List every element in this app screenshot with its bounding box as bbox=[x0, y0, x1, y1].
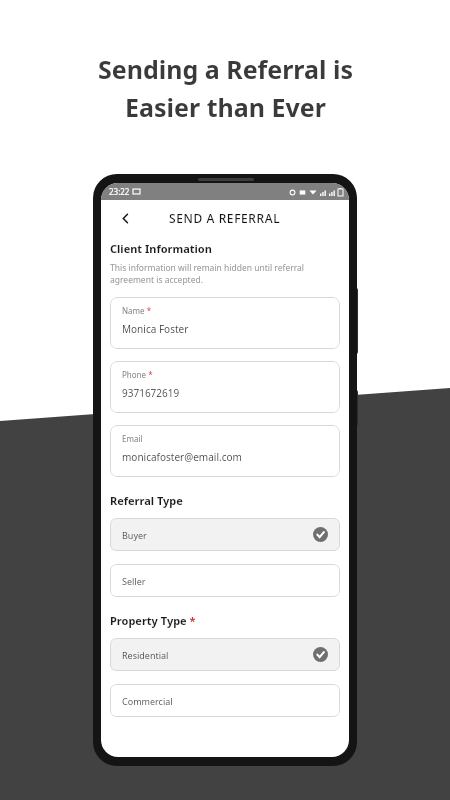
staticText: Residential bbox=[122, 649, 169, 661]
button[interactable]: Phone * bbox=[110, 361, 340, 413]
staticText: Property Type * bbox=[110, 613, 196, 628]
button[interactable]: Residential bbox=[110, 638, 340, 671]
staticText: 9371672619 bbox=[122, 386, 180, 400]
button[interactable]: Commercial bbox=[110, 684, 340, 717]
staticText: Name * bbox=[122, 305, 152, 316]
staticText: SEND A REFERRAL bbox=[169, 210, 281, 226]
staticText: Email bbox=[122, 433, 143, 444]
button[interactable]: Buyer bbox=[110, 518, 340, 551]
staticText: Monica Foster bbox=[122, 322, 189, 336]
staticText: Buyer bbox=[122, 529, 147, 541]
staticText: Sending a Referral is bbox=[98, 52, 353, 86]
staticText: This information will remain hidden unti… bbox=[110, 262, 340, 286]
button[interactable]: Back bbox=[115, 208, 135, 228]
staticText: 23:22 bbox=[109, 186, 130, 197]
staticText: Client Information bbox=[110, 241, 212, 256]
staticText: Referral Type bbox=[110, 493, 183, 508]
staticText: Commercial bbox=[122, 695, 173, 707]
staticText: Phone * bbox=[122, 369, 153, 380]
staticText: Easier than Ever bbox=[125, 90, 326, 124]
button[interactable]: Name * bbox=[110, 297, 340, 349]
staticText: Seller bbox=[122, 575, 146, 587]
button[interactable]: Seller bbox=[110, 564, 340, 597]
button[interactable]: Email bbox=[110, 425, 340, 477]
staticText: monicafoster@email.com bbox=[122, 450, 242, 464]
